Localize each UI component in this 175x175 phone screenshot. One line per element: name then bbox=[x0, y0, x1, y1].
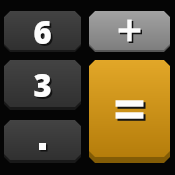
button[interactable]: equals bbox=[89, 60, 170, 163]
staticText: 6 bbox=[35, 13, 54, 52]
button[interactable]: six bbox=[4, 11, 81, 52]
staticText: 3 bbox=[35, 66, 54, 108]
button[interactable]: three bbox=[4, 60, 81, 110]
staticText: 6 bbox=[33, 11, 52, 52]
button[interactable]: decimal point bbox=[4, 120, 81, 163]
staticText: 3 bbox=[33, 64, 52, 106]
button[interactable]: plus bbox=[89, 11, 170, 52]
